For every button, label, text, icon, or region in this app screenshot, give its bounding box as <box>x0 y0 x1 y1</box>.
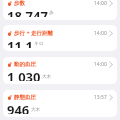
staticText: 946 <box>7 101 30 114</box>
staticText: 歩行 + 走行距離 <box>14 29 54 37</box>
staticText: 歩 <box>49 10 54 16</box>
staticText: キロ <box>34 41 44 47</box>
staticText: 14:00 <box>94 61 107 68</box>
staticText: 大木 <box>42 74 52 80</box>
staticText: 13:57 <box>94 94 107 101</box>
button[interactable]: 歩行 + 走行距離 <box>3 25 117 51</box>
button[interactable]: 歩数 <box>3 0 117 20</box>
staticText: 14:00 <box>94 0 107 7</box>
staticText: 静態血圧 <box>14 94 36 101</box>
staticText: 歩数 <box>14 0 25 7</box>
staticText: 大木 <box>31 107 41 113</box>
staticText: 1,030 <box>7 68 41 81</box>
staticText: 18,747 <box>7 7 48 17</box>
button[interactable]: 動的血圧 <box>3 57 117 84</box>
staticText: 14:00 <box>94 30 107 37</box>
staticText: 11.1 <box>7 37 33 48</box>
button[interactable]: 静態血圧 <box>3 90 117 117</box>
staticText: 動的血圧 <box>14 61 36 68</box>
